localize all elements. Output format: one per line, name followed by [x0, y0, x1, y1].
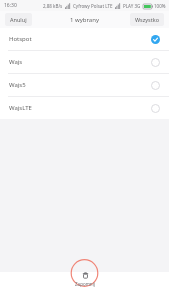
staticText: Wszystko	[135, 16, 159, 23]
button[interactable]: WajsLTE	[0, 97, 169, 119]
button[interactable]: Zapomnij	[66, 259, 103, 287]
staticText: 100%	[154, 3, 166, 9]
staticText: WajsLTE	[9, 104, 151, 112]
button[interactable]: Wajs	[0, 51, 169, 73]
staticText: Wajs	[9, 58, 151, 66]
staticText: Zapomnij	[75, 281, 95, 287]
staticText: PLAY 3G	[123, 3, 141, 9]
button[interactable]: Wszystko	[130, 13, 164, 26]
staticText: 2,88 kB/s	[43, 3, 63, 9]
button[interactable]: Wajs5	[0, 74, 169, 96]
button[interactable]: Hotspot	[0, 28, 169, 50]
staticText: Anuluj	[10, 16, 27, 23]
staticText: Wajs5	[9, 81, 151, 89]
staticText: 1 wybrany	[70, 16, 99, 24]
staticText: 16:30	[4, 2, 17, 9]
button[interactable]: Anuluj	[5, 13, 32, 26]
staticText: Cyfrowy Polsat LTE	[73, 3, 113, 9]
staticText: Hotspot	[9, 35, 151, 43]
